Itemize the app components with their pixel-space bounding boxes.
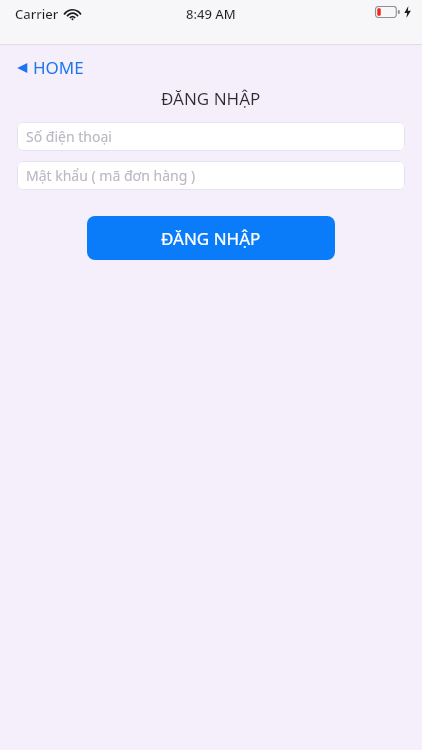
staticText: Mật khẩu ( mã đơn hàng ) (26, 166, 196, 185)
staticText: HOME (33, 56, 84, 79)
staticText: ĐĂNG NHẬP (161, 87, 261, 110)
staticText: Carrier (15, 5, 59, 23)
button[interactable]: HOME (16, 54, 85, 81)
staticText: Số điện thoại (26, 127, 112, 146)
staticText: ĐĂNG NHẬP (161, 227, 261, 250)
staticText: 8:49 AM (186, 5, 236, 23)
button[interactable]: Số điện thoại (17, 122, 405, 151)
button[interactable]: Mật khẩu ( mã đơn hàng ) (17, 161, 405, 190)
button[interactable]: ĐĂNG NHẬP (87, 216, 335, 260)
